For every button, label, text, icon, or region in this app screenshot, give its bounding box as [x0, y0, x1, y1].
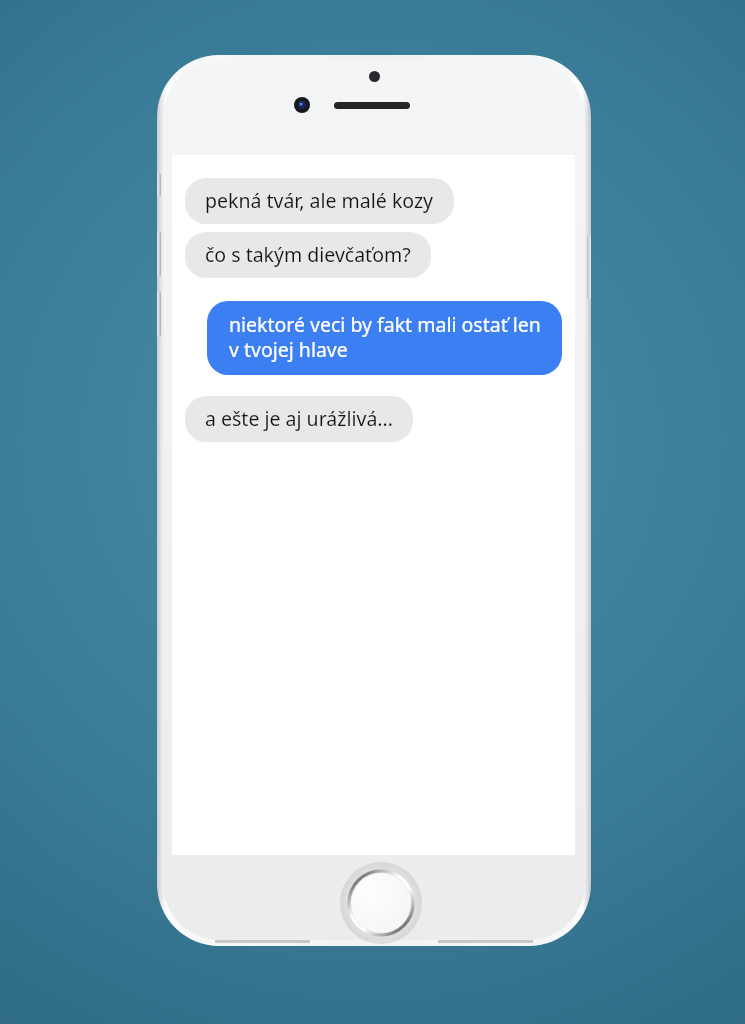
staticText: pekná tvár, ale malé kozy — [205, 187, 434, 214]
button[interactable]: pekná tvár, ale malé kozy — [185, 178, 454, 224]
button[interactable]: čo s takým dievčaťom? — [185, 232, 431, 278]
staticText: niektoré veci by fakt mali ostať len v t… — [229, 311, 548, 363]
button[interactable]: niektoré veci by fakt mali ostať len v t… — [207, 301, 562, 375]
button[interactable]: Home — [340, 862, 422, 944]
staticText: a ešte je aj urážlivá... — [205, 405, 393, 432]
button[interactable]: a ešte je aj urážlivá... — [185, 396, 413, 442]
staticText: čo s takým dievčaťom? — [205, 241, 411, 268]
